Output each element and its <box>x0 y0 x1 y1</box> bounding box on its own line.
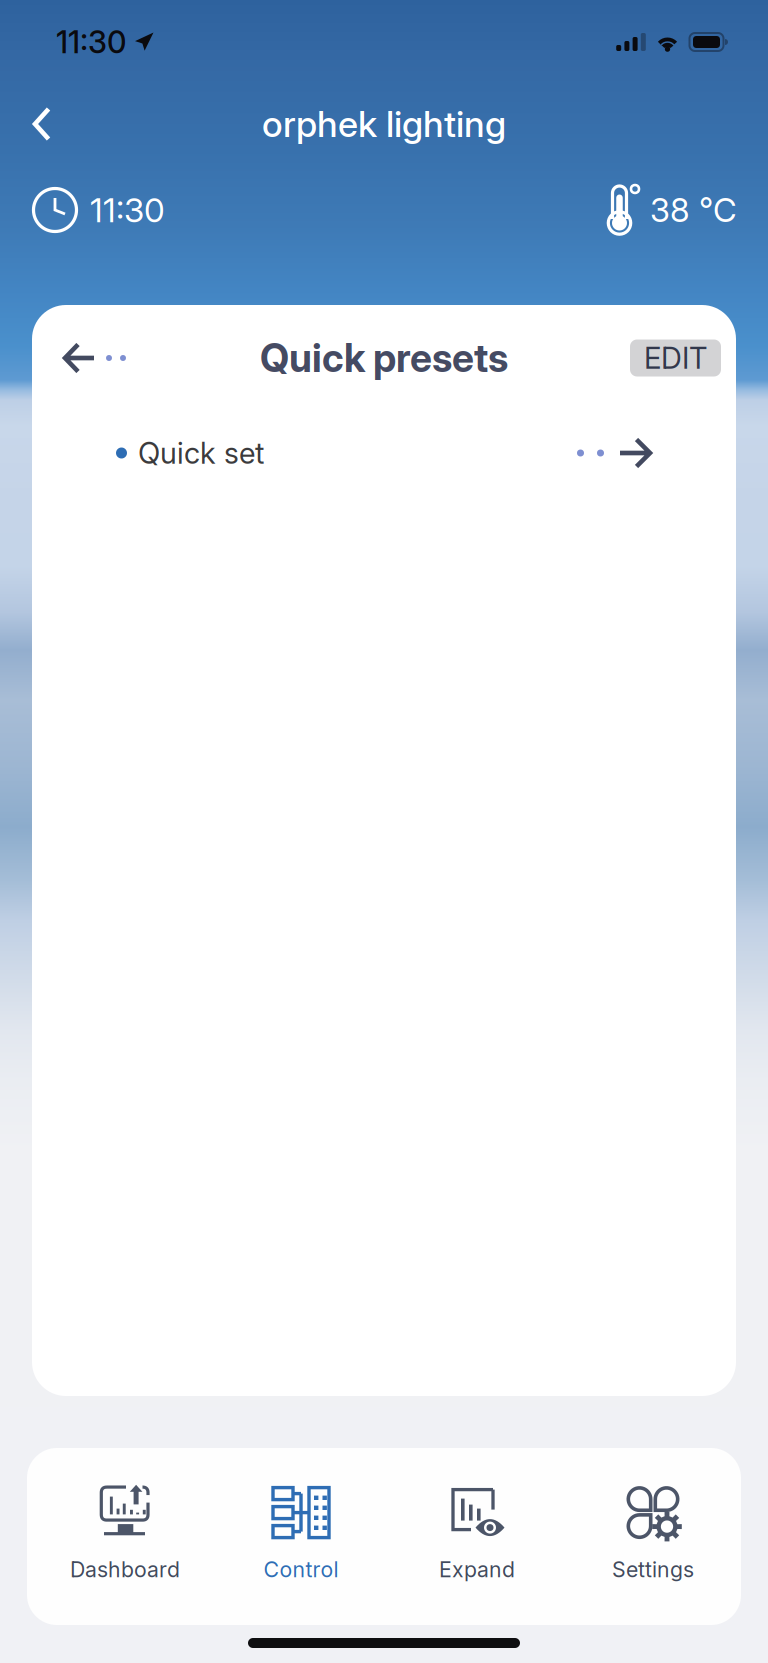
button[interactable]: EDIT <box>630 339 721 376</box>
staticText: Quick presets <box>260 335 508 381</box>
button[interactable]: Dashboard <box>37 1451 213 1622</box>
staticText: 11:30 <box>56 23 126 60</box>
button[interactable]: Quick set <box>32 411 736 495</box>
staticText: Quick set <box>138 435 264 471</box>
staticText: Dashboard <box>70 1557 180 1582</box>
button[interactable]: Back <box>14 94 70 154</box>
button[interactable]: Settings <box>565 1451 741 1622</box>
button[interactable]: Expand <box>389 1451 565 1622</box>
staticText: Expand <box>439 1557 515 1582</box>
staticText: Control <box>263 1557 338 1582</box>
button[interactable]: Back <box>56 330 132 386</box>
staticText: 11:30 <box>90 190 165 230</box>
staticText: 38 °C <box>650 190 737 230</box>
staticText: Settings <box>612 1557 694 1582</box>
staticText: EDIT <box>644 340 707 376</box>
staticText: orphek lighting <box>262 102 506 146</box>
button[interactable]: Control <box>213 1451 389 1622</box>
